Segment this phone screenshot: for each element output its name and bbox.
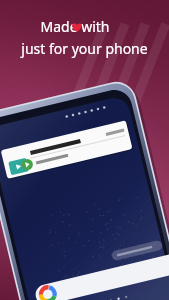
button[interactable]: Phone preview — [0, 0, 169, 300]
staticText: just for your phone — [0, 39, 169, 58]
staticText: Made with — [40, 17, 110, 36]
